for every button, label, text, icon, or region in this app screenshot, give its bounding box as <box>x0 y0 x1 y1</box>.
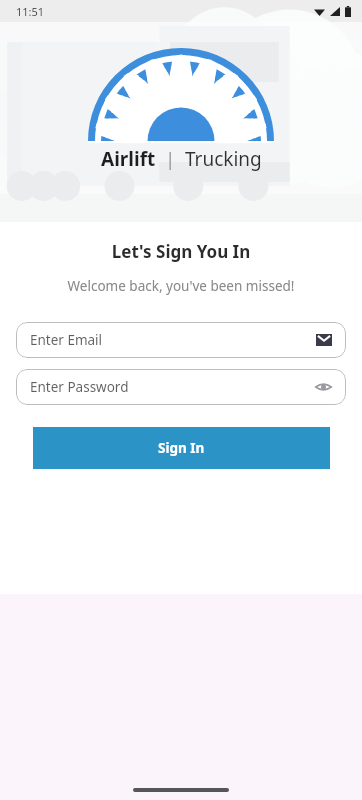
other: Email <box>316 334 332 346</box>
staticText: Trucking <box>185 146 262 172</box>
staticText: Let's Sign You In <box>0 240 362 263</box>
button[interactable]: Show password <box>315 381 332 393</box>
staticText: 11:51 <box>16 4 45 19</box>
button[interactable]: Enter Email <box>16 322 346 358</box>
staticText: Airlift <box>101 146 156 172</box>
staticText: Welcome back, you've been missed! <box>0 277 362 295</box>
staticText: Enter Email <box>30 331 316 349</box>
staticText: Sign In <box>158 439 205 457</box>
staticText: | <box>156 147 185 172</box>
button[interactable]: Sign In <box>33 427 330 469</box>
button[interactable]: Enter Password <box>16 369 346 405</box>
staticText: Enter Password <box>30 378 315 396</box>
other: Airlift Trucking logo <box>88 85 274 143</box>
